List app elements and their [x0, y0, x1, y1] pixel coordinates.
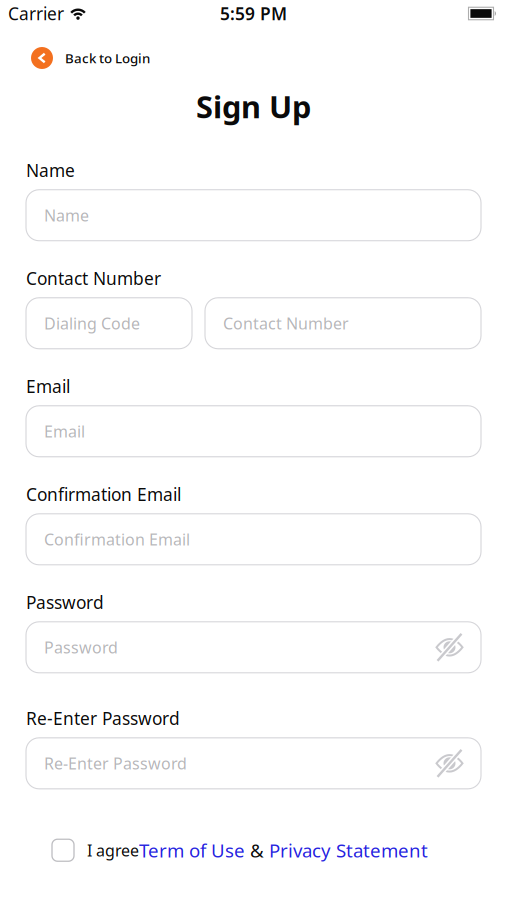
button[interactable]: Privacy Statement	[269, 838, 428, 863]
staticText: Re-Enter Password	[44, 753, 187, 774]
textField[interactable]: Name	[26, 190, 481, 241]
button[interactable]: Term of Use	[139, 838, 245, 863]
staticText: Sign Up	[196, 86, 311, 127]
button[interactable]: Back to Login	[31, 47, 150, 69]
staticText: Name	[26, 159, 75, 182]
staticText: Term of Use	[139, 838, 245, 863]
staticText: Contact Number	[26, 267, 161, 290]
staticText: Email	[26, 375, 70, 398]
staticText: Back to Login	[65, 49, 150, 67]
staticText: Carrier	[8, 2, 64, 25]
button[interactable]: I agree	[52, 839, 74, 861]
textField[interactable]: Re-Enter Password	[26, 738, 481, 789]
staticText: 5:59 PM	[220, 2, 287, 25]
textField[interactable]: Contact Number	[205, 298, 481, 349]
staticText: Contact Number	[223, 313, 349, 334]
staticText: Confirmation Email	[44, 529, 190, 550]
textField[interactable]: Password	[26, 622, 481, 673]
staticText: Confirmation Email	[26, 483, 181, 506]
button[interactable]: Show password	[435, 752, 464, 774]
staticText: Name	[44, 205, 89, 226]
textField[interactable]: Dialing Code	[26, 298, 192, 349]
staticText: Password	[44, 637, 118, 658]
textField[interactable]: Confirmation Email	[26, 514, 481, 565]
staticText: &	[245, 838, 269, 863]
textField[interactable]: Email	[26, 406, 481, 457]
staticText: I agree	[87, 840, 139, 861]
staticText: Password	[26, 591, 104, 614]
staticText: Re-Enter Password	[26, 707, 180, 730]
staticText: Dialing Code	[44, 313, 140, 334]
staticText: Email	[44, 421, 85, 442]
staticText: Privacy Statement	[269, 838, 428, 863]
button[interactable]: Show password	[435, 636, 464, 658]
